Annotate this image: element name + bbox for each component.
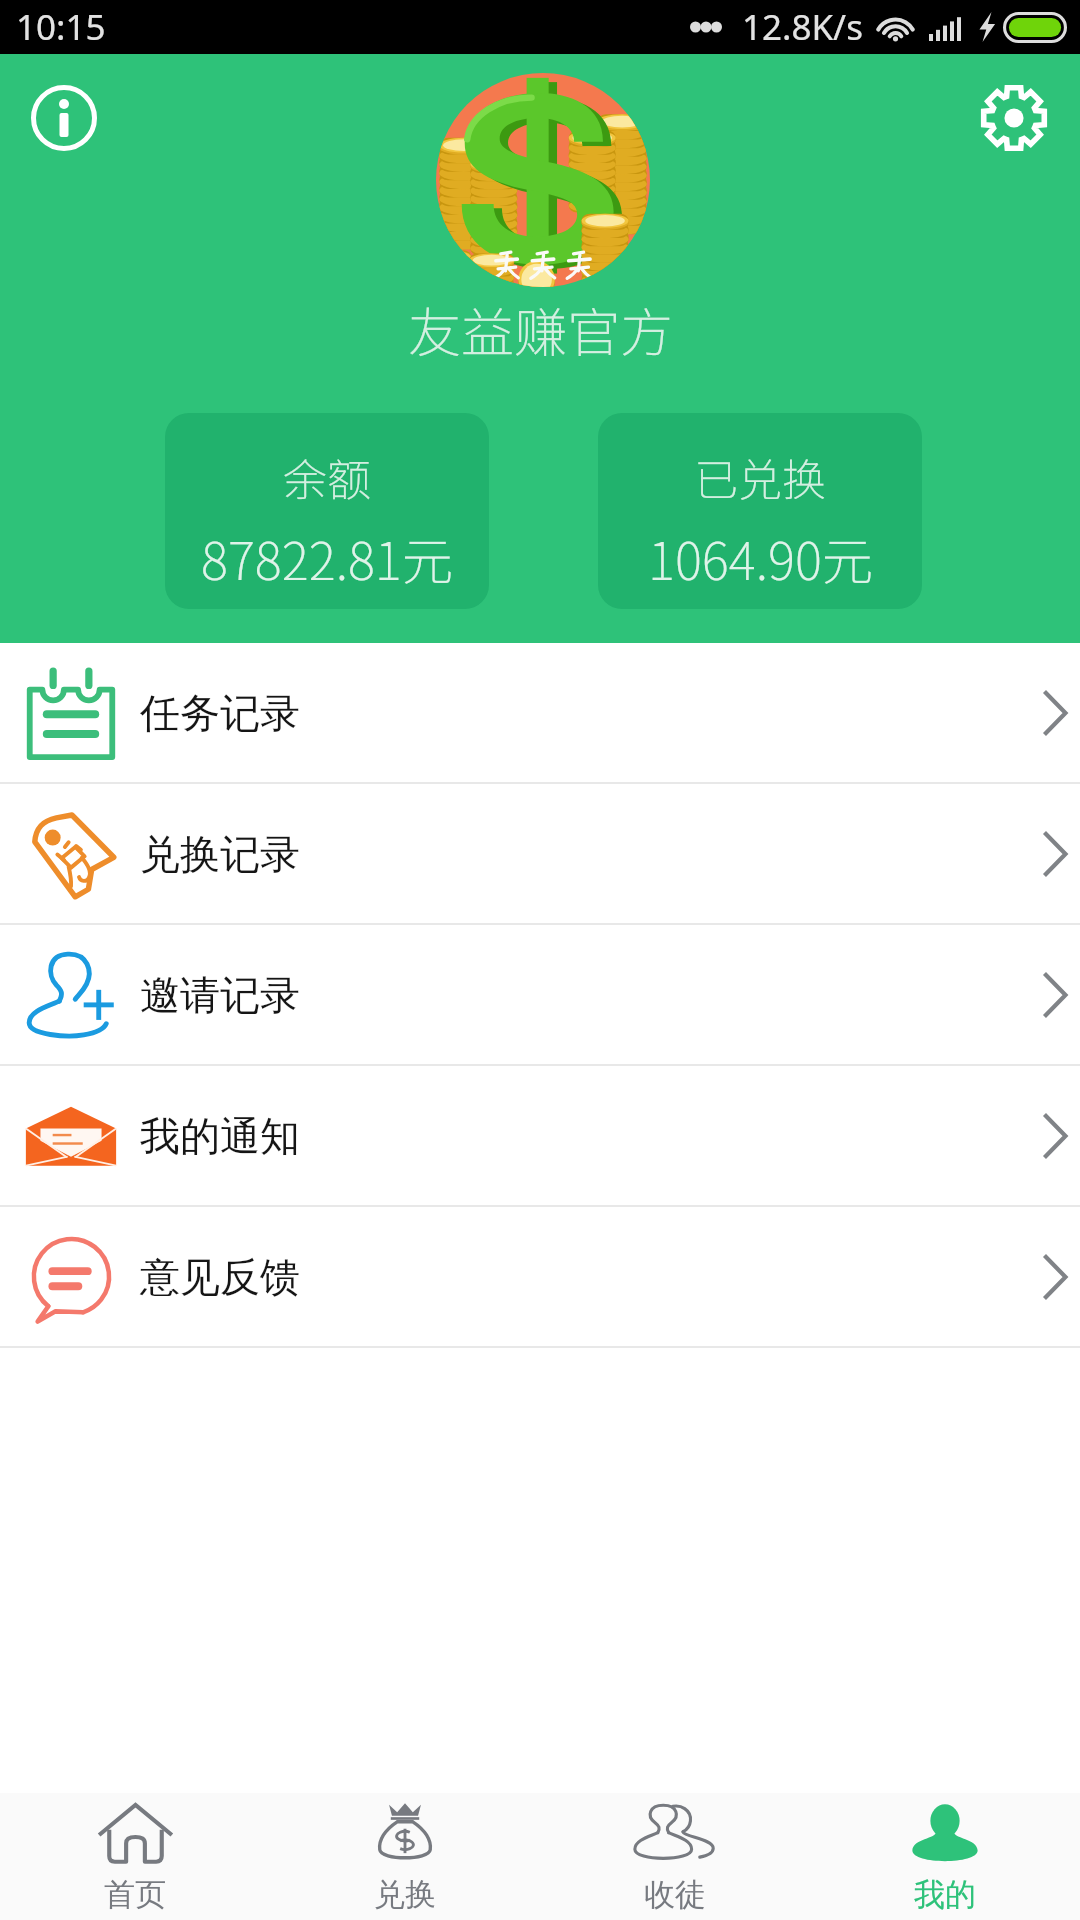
button[interactable]: 任务记录 [0,643,1080,782]
staticText: 87822.81元 [201,521,453,595]
staticText: 友益赚官方 [408,291,673,368]
staticText: 余额 [283,445,371,509]
button[interactable]: 我的 [810,1793,1080,1920]
button[interactable]: 兑换 [270,1793,540,1920]
staticText: 1064.90元 [648,521,873,595]
staticText: 10:15 [16,3,106,51]
staticText: 邀请记录 [140,970,300,1020]
button[interactable]: 已兑换 [598,413,922,609]
button[interactable]: 兑换记录 [0,784,1080,923]
staticText: 兑换记录 [140,829,300,879]
staticText: 收徒 [644,1875,706,1914]
staticText: 意见反馈 [140,1252,300,1302]
button[interactable]: 邀请记录 [0,925,1080,1064]
staticText: 首页 [104,1875,166,1914]
staticText: 12.8K/s [742,3,863,51]
staticText: 我的通知 [140,1111,300,1161]
staticText: 我的 [914,1875,976,1914]
button[interactable]: 余额 [165,413,489,609]
button[interactable]: Settings [978,82,1050,154]
button[interactable]: Info [28,82,100,154]
staticText: 任务记录 [140,688,300,738]
staticText: 已兑换 [694,445,826,509]
button[interactable]: 首页 [0,1793,270,1920]
button[interactable]: 意见反馈 [0,1207,1080,1346]
button[interactable]: 收徒 [540,1793,810,1920]
button[interactable]: 我的通知 [0,1066,1080,1205]
staticText: 兑换 [374,1875,436,1914]
